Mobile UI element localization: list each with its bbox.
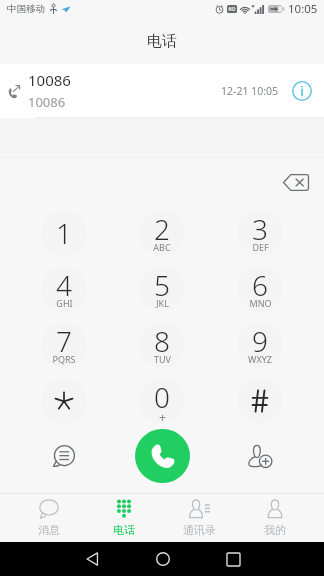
button[interactable]: 8 xyxy=(113,317,211,373)
staticText: 8 xyxy=(154,322,170,360)
button[interactable]: 9 xyxy=(211,317,309,373)
button[interactable]: Back xyxy=(75,542,109,576)
staticText: MNO xyxy=(249,297,272,309)
staticText: 3 xyxy=(252,210,268,248)
staticText: 12-21 10:05 xyxy=(221,84,278,98)
button[interactable]: Recent apps xyxy=(216,542,250,576)
staticText: 5 xyxy=(154,266,170,304)
button[interactable]: 6 xyxy=(211,261,309,317)
button[interactable]: Call xyxy=(135,429,190,483)
staticText: 电话 xyxy=(113,523,135,537)
staticText: 电话 xyxy=(147,32,177,51)
button[interactable]: 消息 xyxy=(11,493,86,542)
button[interactable]: Add contact xyxy=(211,429,309,483)
staticText: DEF xyxy=(252,241,269,253)
staticText: 2 xyxy=(154,210,170,248)
button[interactable]: 0 xyxy=(113,373,211,429)
staticText: 消息 xyxy=(38,523,60,537)
staticText: GHI xyxy=(56,297,73,309)
button[interactable]: 1 xyxy=(15,205,113,261)
button[interactable]: 5 xyxy=(113,261,211,317)
staticText: 9 xyxy=(252,322,268,360)
staticText: WXYZ xyxy=(248,353,272,365)
button[interactable]: 通讯录 xyxy=(161,493,237,542)
staticText: TUV xyxy=(154,353,171,365)
button[interactable]: 我的 xyxy=(237,493,313,542)
staticText: + xyxy=(159,409,166,425)
staticText: ABC xyxy=(153,241,171,253)
button[interactable]: 10086 xyxy=(0,64,324,118)
staticText: 通讯录 xyxy=(183,523,216,537)
staticText: 我的 xyxy=(264,523,286,537)
button[interactable]: 2 xyxy=(113,205,211,261)
button[interactable]: 7 xyxy=(15,317,113,373)
staticText: 7 xyxy=(56,322,72,360)
button[interactable]: 3 xyxy=(211,205,309,261)
button[interactable]: Home xyxy=(146,542,180,576)
staticText: PQRS xyxy=(52,353,76,365)
staticText: 中国移动 xyxy=(7,3,45,15)
button[interactable] xyxy=(15,373,113,429)
staticText: 10:05 xyxy=(288,1,318,17)
button[interactable]: Send message xyxy=(15,429,113,483)
button[interactable]: Backspace xyxy=(279,165,313,199)
staticText: 10086 xyxy=(28,70,71,90)
staticText: 6 xyxy=(252,266,268,304)
staticText: 1 xyxy=(56,214,72,252)
button[interactable] xyxy=(211,373,309,429)
staticText: 0 xyxy=(154,378,170,416)
staticText: 10086 xyxy=(28,93,66,111)
button[interactable]: 4 xyxy=(15,261,113,317)
staticText: 4 xyxy=(56,266,72,304)
staticText: JKL xyxy=(156,297,169,309)
button[interactable]: 电话 xyxy=(86,493,161,542)
button[interactable]: Call details xyxy=(288,77,316,105)
